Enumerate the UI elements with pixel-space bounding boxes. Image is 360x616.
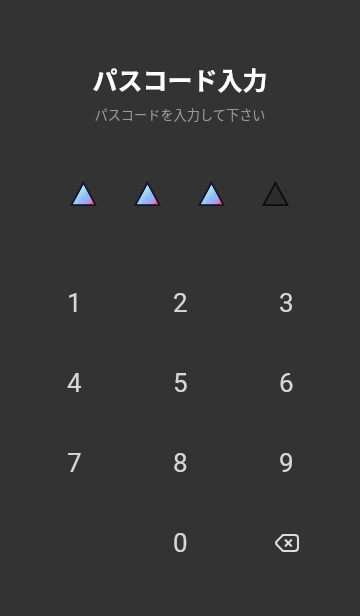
staticText: 5	[173, 368, 188, 398]
staticText: 0	[173, 528, 188, 558]
button[interactable]: 3	[233, 263, 339, 343]
button[interactable]: Delete	[233, 503, 339, 583]
button[interactable]: 5	[127, 343, 233, 423]
button[interactable]: 6	[233, 343, 339, 423]
staticText: 6	[279, 368, 294, 398]
button[interactable]: 1	[21, 263, 127, 343]
staticText: 1	[67, 288, 82, 318]
button[interactable]: 0	[127, 503, 233, 583]
staticText: 7	[67, 448, 82, 478]
staticText: パスコードを入力して下さい	[0, 105, 360, 124]
staticText: 3	[279, 288, 294, 318]
button[interactable]: 9	[233, 423, 339, 503]
staticText: パスコード入力	[0, 61, 360, 97]
staticText: 4	[67, 368, 82, 398]
staticText: 9	[279, 448, 294, 478]
button[interactable]: 4	[21, 343, 127, 423]
staticText: 8	[173, 448, 188, 478]
staticText: 2	[173, 288, 188, 318]
other: Delete	[274, 534, 299, 552]
button[interactable]: 2	[127, 263, 233, 343]
button[interactable]: 8	[127, 423, 233, 503]
button[interactable]: 7	[21, 423, 127, 503]
